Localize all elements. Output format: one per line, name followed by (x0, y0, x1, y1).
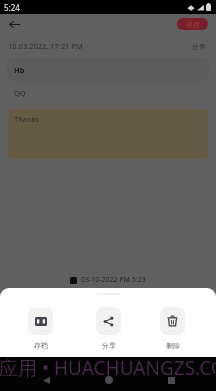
staticText: 10.03.2022, 17:21 PM (8, 41, 83, 51)
button[interactable]: Back (38, 372, 54, 388)
staticText: 应用 • HUACHUANGZS.COM (0, 355, 215, 381)
button[interactable]: QQ (8, 86, 208, 100)
button[interactable]: Recents (163, 372, 179, 388)
button[interactable]: 分享 (96, 307, 121, 350)
staticText: 03-10-2022 PM 5:23 (81, 275, 146, 285)
button[interactable]: 保存 (177, 18, 208, 30)
button[interactable]: 分类 (190, 40, 208, 53)
button[interactable]: 存档 (28, 307, 53, 350)
staticText: 分享 (102, 341, 116, 350)
staticText: 保存 (186, 20, 200, 29)
staticText: 分类 (192, 42, 206, 51)
staticText: Thanks (14, 114, 40, 124)
staticText: Hb (14, 65, 25, 75)
staticText: 5:24 (4, 2, 20, 13)
button[interactable]: Hb (7, 58, 209, 81)
button[interactable]: Home (101, 372, 117, 388)
staticText: 存档 (34, 341, 48, 350)
staticText: 删除 (166, 341, 180, 350)
button[interactable]: 删除 (160, 307, 185, 350)
staticText: QQ (14, 88, 26, 98)
button[interactable]: Back (4, 14, 24, 34)
